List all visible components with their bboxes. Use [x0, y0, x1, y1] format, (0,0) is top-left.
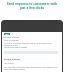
staticText: Learn more about reviews [4, 46, 28, 49]
staticText: NEW [5, 33, 9, 35]
staticText: Send requests to customers with just a f… [5, 2, 59, 10]
staticText: Request a review from a customer [4, 36, 20, 41]
staticText: Last 30 days [4, 62, 14, 64]
button[interactable]: NEW [5, 33, 9, 35]
staticText: Choose a customer and send them a quick … [4, 42, 58, 46]
staticText: See how your customers are responding to… [4, 66, 58, 70]
staticText: Recent activity [4, 58, 21, 61]
